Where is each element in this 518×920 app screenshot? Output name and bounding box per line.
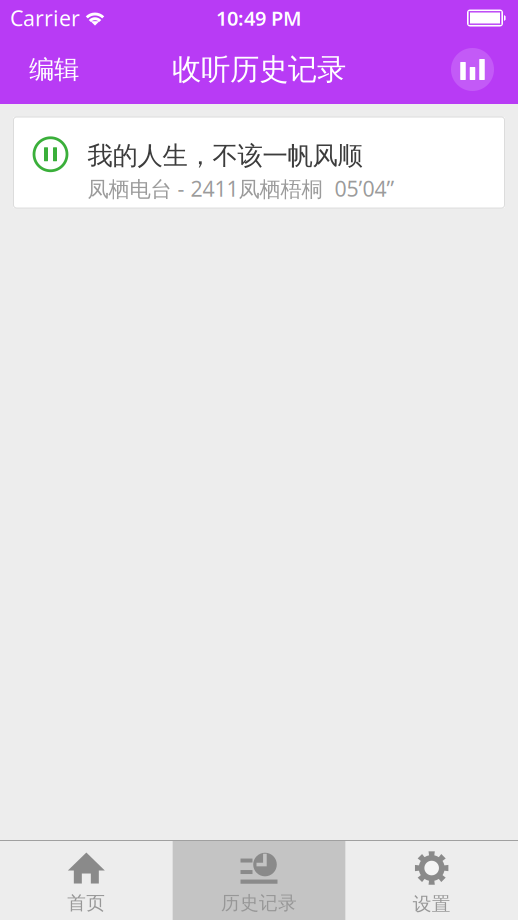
staticText: 首页: [67, 891, 105, 914]
staticText: 设置: [413, 892, 451, 915]
button[interactable]: 设置: [345, 841, 518, 920]
button[interactable]: 历史记录: [173, 841, 345, 920]
staticText: 我的人生，不该一帆风顺: [87, 140, 362, 171]
staticText: 编辑: [29, 54, 79, 85]
button[interactable]: 我的人生，不该一帆风顺: [13, 117, 504, 208]
staticText: Carrier: [10, 4, 80, 32]
staticText: 历史记录: [221, 891, 297, 914]
staticText: 凤栖电台 - 2411凤栖梧桐 05’04”: [87, 174, 394, 203]
staticText: 10:49 PM: [216, 5, 302, 31]
button[interactable]: 编辑: [0, 41, 95, 97]
staticText: 收听历史记录: [172, 51, 346, 87]
button[interactable]: 统计: [427, 41, 518, 97]
button[interactable]: 首页: [0, 841, 173, 920]
